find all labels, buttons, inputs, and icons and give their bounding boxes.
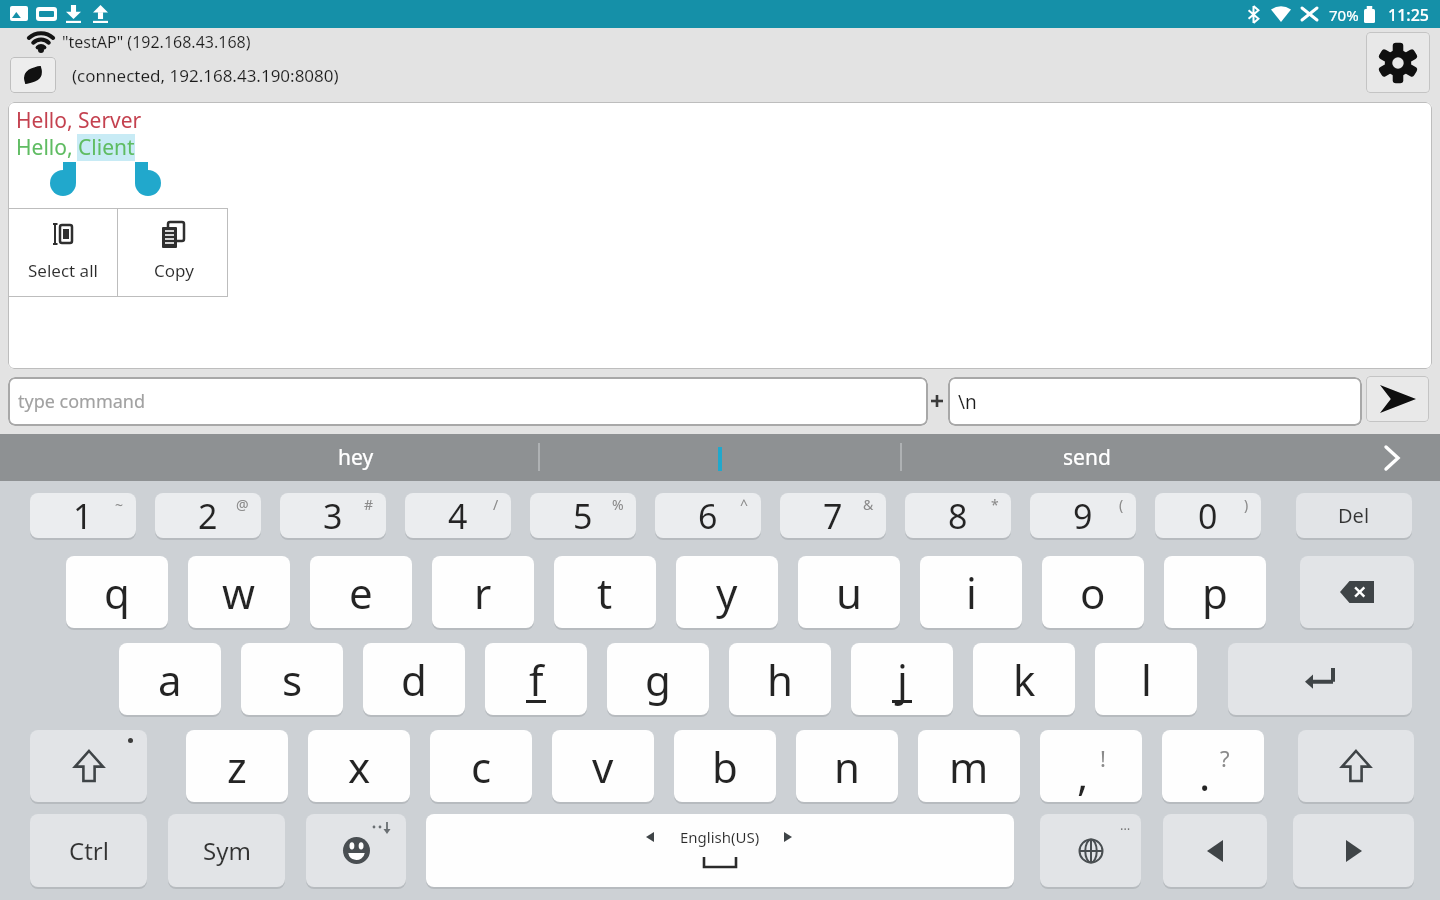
staticText: 8 [948,493,968,538]
staticText: k [1013,651,1036,708]
staticText: z [227,738,247,795]
staticText: 6 [698,493,718,538]
staticText: m [949,738,989,795]
staticText: n [834,738,860,795]
button[interactable]: 3 [280,493,386,538]
staticText: ? [1220,743,1230,773]
staticText: 5 [573,493,593,538]
button[interactable]: n [796,730,898,802]
button[interactable] [1300,556,1414,628]
button[interactable]: p [1164,556,1266,628]
button[interactable] [1366,32,1430,93]
button[interactable]: o [1042,556,1144,628]
button[interactable]: 4 [405,493,511,538]
staticText: 3 [323,493,343,538]
button[interactable]: , [1040,730,1142,802]
button[interactable] [8,208,117,297]
button[interactable] [30,730,147,802]
button[interactable] [1298,730,1414,802]
button[interactable]: type command [8,377,928,426]
button[interactable]: k [973,643,1075,715]
staticText: type command [18,389,146,414]
button[interactable]: 6 [655,493,761,538]
staticText: 7 [823,493,843,538]
button[interactable]: a [119,643,221,715]
button[interactable]: Sym [168,814,285,887]
staticText: u [836,564,862,621]
staticText: l [1141,651,1152,708]
staticText: 1 [73,493,93,538]
button[interactable]: e [310,556,412,628]
button[interactable]: 5 [530,493,636,538]
button[interactable]: v [552,730,654,802]
button[interactable]: 8 [905,493,1011,538]
button[interactable] [1366,376,1429,422]
button[interactable] [1378,444,1406,472]
button[interactable] [1293,814,1414,887]
button[interactable]: 9 [1030,493,1136,538]
button[interactable]: … [1040,814,1141,887]
button[interactable]: i [920,556,1022,628]
staticText: r [474,564,492,621]
staticText: 0 [1198,493,1218,538]
button[interactable]: b [674,730,776,802]
button[interactable]: g [607,643,709,715]
staticText: … [1120,816,1131,834]
staticText: y [716,564,738,621]
button[interactable]: z [186,730,288,802]
staticText: @ [236,495,249,514]
button[interactable]: 7 [780,493,886,538]
button[interactable]: s [241,643,343,715]
staticText: p [1202,564,1228,621]
button[interactable]: 2 [155,493,261,538]
button[interactable]: l [1095,643,1197,715]
button[interactable]: q [66,556,168,628]
button[interactable]: . [1162,730,1264,802]
staticText: & [863,495,874,514]
staticText: s [282,651,303,708]
staticText: ) [1244,495,1249,514]
button[interactable]: x [308,730,410,802]
staticText: ( [1119,495,1124,514]
button[interactable]: u [798,556,900,628]
staticText: f [529,651,544,708]
staticText: t [597,564,613,621]
staticText: Ctrl [69,834,109,867]
button[interactable] [10,57,56,93]
button[interactable]: English(US) [426,814,1014,887]
staticText: 9 [1073,493,1093,538]
button[interactable]: d [363,643,465,715]
button[interactable]: Del [1296,493,1412,538]
button[interactable] [1228,643,1412,715]
button[interactable]: r [432,556,534,628]
button[interactable]: c [430,730,532,802]
staticText: Hello, Client [16,133,135,160]
staticText: (connected, 192.168.43.190:8080) [72,64,339,86]
button[interactable]: j [851,643,953,715]
button[interactable]: 0 [1155,493,1261,538]
button[interactable] [1163,814,1267,887]
staticText: * [991,495,999,514]
staticText: c [471,738,492,795]
button[interactable]: Ctrl [30,814,147,887]
staticText: j [897,651,908,708]
button[interactable]: \n [948,377,1362,426]
button[interactable]: y [676,556,778,628]
button[interactable]: 1 [30,493,136,538]
staticText: hey [338,443,374,472]
button[interactable]: w [188,556,290,628]
staticText: , [1077,746,1089,802]
button[interactable] [118,208,228,297]
staticText: send [1063,443,1111,472]
staticText: 2 [198,493,218,538]
staticText: 11:25 [1388,4,1429,24]
button[interactable]: hey [170,434,542,481]
button[interactable]: m [918,730,1020,802]
button[interactable]: send [902,434,1272,481]
button[interactable]: h [729,643,831,715]
staticText: b [712,738,738,795]
staticText: Sym [203,834,251,867]
button[interactable] [306,814,406,887]
button[interactable]: t [554,556,656,628]
button[interactable]: f [485,643,587,715]
